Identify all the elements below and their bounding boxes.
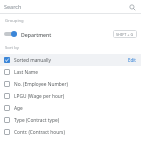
button[interactable]: Age — [0, 102, 141, 114]
button[interactable]: Search — [0, 0, 141, 13]
button[interactable]: Department — [0, 27, 141, 41]
staticText: Sorted manually — [14, 57, 51, 64]
staticText: SHIFT + G — [116, 32, 134, 37]
staticText: LPGU (Wage per hour) — [14, 93, 65, 100]
staticText: Type (Contract type) — [14, 117, 60, 124]
button[interactable]: No. (Employee Number) — [0, 78, 141, 90]
staticText: Department — [21, 31, 52, 38]
staticText: Contr. (Contract hours) — [14, 129, 65, 136]
button[interactable]: Last Name — [0, 66, 141, 78]
button[interactable]: LPGU (Wage per hour) — [0, 90, 141, 102]
staticText: Search — [4, 3, 22, 10]
staticText: Last Name — [14, 69, 39, 76]
staticText: Sort by — [5, 45, 19, 51]
button[interactable]: Edit — [128, 57, 136, 63]
button[interactable]: Type (Contract type) — [0, 114, 141, 126]
staticText: Age — [14, 105, 23, 112]
button[interactable]: Contr. (Contract hours) — [0, 126, 141, 138]
button[interactable]: Search — [127, 2, 137, 12]
staticText: Edit — [128, 57, 136, 63]
staticText: Grouping — [5, 18, 24, 24]
button[interactable]: SHIFT + G — [113, 30, 137, 38]
button[interactable]: Sorted manually — [0, 54, 141, 66]
staticText: No. (Employee Number) — [14, 81, 68, 88]
